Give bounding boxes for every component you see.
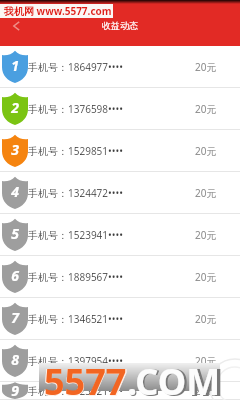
staticText: 我机网 www.5577.com <box>4 4 112 18</box>
staticText: 4 <box>11 182 19 201</box>
staticText: 20元 <box>195 186 217 200</box>
staticText: 20元 <box>195 102 217 116</box>
staticText: 9 <box>11 381 19 398</box>
button[interactable]: 2 <box>0 88 240 130</box>
staticText: 20元 <box>195 312 217 326</box>
button[interactable]: 7 <box>0 298 240 340</box>
button[interactable]: 1 <box>0 46 240 88</box>
button[interactable]: 6 <box>0 256 240 298</box>
button[interactable]: 5 <box>0 214 240 256</box>
staticText: 20元 <box>195 60 217 74</box>
button[interactable]: 4 <box>0 172 240 214</box>
staticText: 手机号：1889567•••• <box>28 270 124 284</box>
staticText: 20元 <box>195 384 217 398</box>
staticText: .COM <box>127 357 221 400</box>
staticText: 手机号：1864977•••• <box>28 60 124 74</box>
button[interactable]: 9 <box>0 382 240 400</box>
staticText: 手机号：1529851•••• <box>28 144 124 158</box>
staticText: 6 <box>11 266 19 285</box>
staticText: 5577 <box>43 356 128 400</box>
staticText: 手机号：1376598•••• <box>28 102 124 116</box>
staticText: 20元 <box>195 354 217 368</box>
staticText: 20元 <box>195 228 217 242</box>
staticText: 20元 <box>195 270 217 284</box>
staticText: 收益动态 <box>102 20 138 31</box>
staticText: 手机号：1523321•••• <box>28 384 124 398</box>
button[interactable]: Back <box>0 0 34 46</box>
staticText: 20元 <box>195 144 217 158</box>
staticText: 3 <box>11 140 19 159</box>
staticText: 1 <box>11 56 19 75</box>
staticText: 手机号：1523941•••• <box>28 228 124 242</box>
button[interactable]: 3 <box>0 130 240 172</box>
staticText: 5577 <box>44 357 127 400</box>
staticText: 5 <box>11 224 19 243</box>
staticText: 2 <box>11 98 19 117</box>
staticText: 手机号：1397954•••• <box>28 354 124 368</box>
button[interactable]: 8 <box>0 340 240 382</box>
staticText: 8 <box>11 350 19 369</box>
staticText: 手机号：1324472•••• <box>28 186 124 200</box>
staticText: 手机号：1346521•••• <box>28 312 124 326</box>
staticText: 7 <box>11 308 19 327</box>
staticText: .COM <box>128 356 224 400</box>
